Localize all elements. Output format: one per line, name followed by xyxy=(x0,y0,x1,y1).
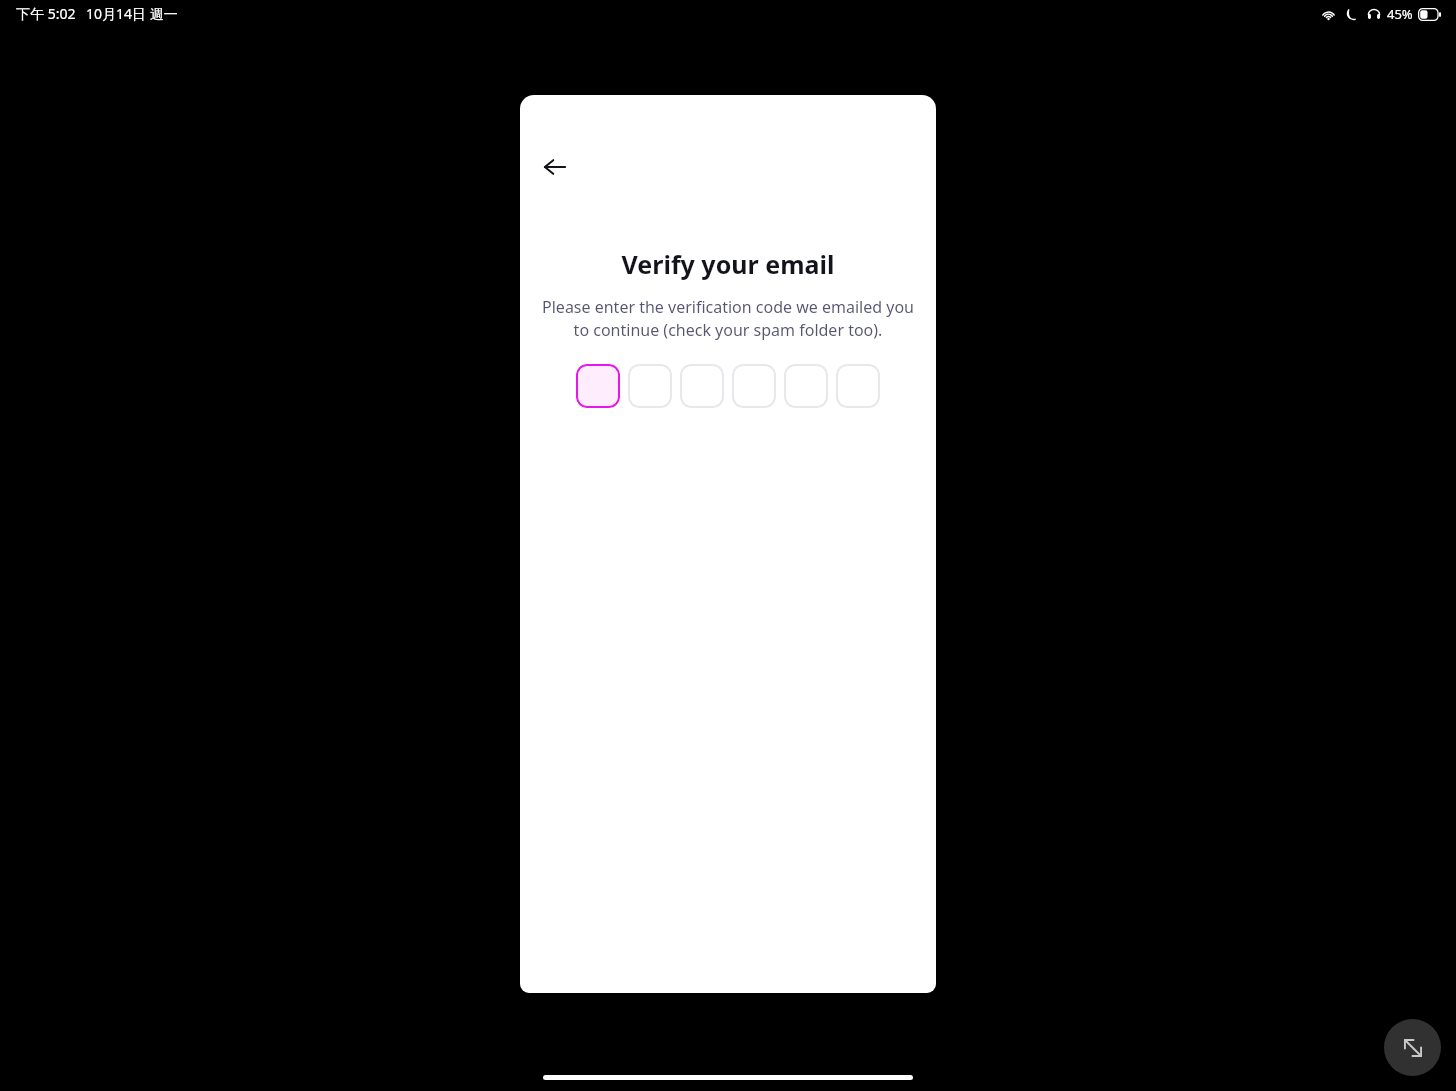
button[interactable]: Verification code digit xyxy=(732,364,776,408)
button[interactable]: Verification code digit xyxy=(680,364,724,408)
button[interactable]: Verification code digit xyxy=(784,364,828,408)
button[interactable]: Verification code digit xyxy=(836,364,880,408)
button[interactable]: Back xyxy=(531,143,579,191)
staticText: Please enter the verification code we em… xyxy=(540,296,916,341)
staticText: Verify your email xyxy=(520,247,936,281)
button[interactable]: Verification code digit xyxy=(576,364,620,408)
button[interactable]: Verification code digit xyxy=(628,364,672,408)
staticText: 10月14日 週一 xyxy=(86,4,178,23)
staticText: 45% xyxy=(1387,5,1413,23)
button[interactable]: Resize window xyxy=(1384,1019,1441,1076)
staticText: 下午 5:02 xyxy=(16,4,76,23)
